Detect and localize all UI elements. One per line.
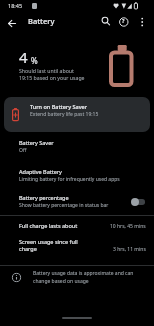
staticText: 3 hrs, 11 mins: [113, 246, 146, 253]
staticText: 18:45: [8, 2, 23, 9]
button[interactable]: Battery Saver: [0, 134, 154, 160]
staticText: Limiting battery for infrequently used a…: [19, 176, 120, 183]
staticText: Should last until about 19:15 based on y…: [19, 67, 85, 82]
button[interactable]: [6, 18, 18, 30]
staticText: Full charge lasts about: [19, 222, 78, 229]
button[interactable]: Adaptive Battery: [0, 163, 154, 189]
button[interactable]: Turn on Battery Saver: [4, 97, 150, 132]
button[interactable]: [100, 15, 112, 27]
staticText: Show battery percentage in status bar: [19, 202, 109, 209]
button[interactable]: [137, 16, 148, 28]
staticText: Off: [19, 147, 27, 154]
staticText: Turn on Battery Saver: [30, 103, 88, 110]
staticText: Battery percentage: [19, 194, 69, 201]
staticText: %: [31, 55, 38, 66]
button[interactable]: Screen usage since full charge: [0, 236, 154, 262]
button[interactable]: ?: [118, 16, 130, 28]
staticText: Battery: [28, 16, 55, 26]
staticText: ?: [122, 18, 125, 25]
staticText: Screen usage since full charge: [19, 238, 78, 252]
staticText: 10 hrs, 45 mins: [110, 223, 146, 230]
staticText: Battery Saver: [19, 139, 54, 146]
staticText: Adaptive Battery: [19, 168, 62, 175]
staticText: Extend battery life past 19:15: [30, 111, 99, 118]
button[interactable]: Full charge lasts about: [0, 216, 154, 236]
button[interactable]: Battery percentage: [0, 189, 154, 215]
staticText: Battery usage data is approximate and ca…: [33, 270, 145, 284]
staticText: 4: [19, 47, 28, 67]
